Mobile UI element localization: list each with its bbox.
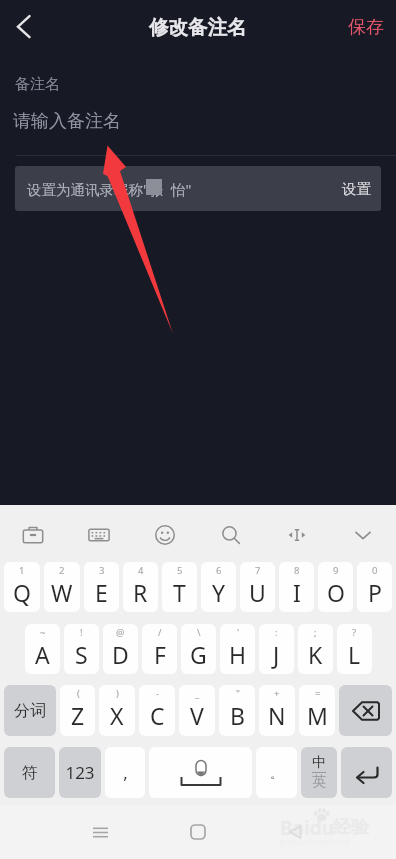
staticText: 7 (255, 564, 261, 577)
button[interactable]: ? (337, 624, 372, 674)
button[interactable]: 中 (301, 747, 337, 798)
button[interactable]: , (105, 747, 145, 798)
button[interactable]: 6 (201, 562, 236, 612)
button[interactable]: Move cursor (264, 513, 330, 557)
button[interactable]: 8 (279, 562, 314, 612)
button[interactable]: Hide keyboard (330, 513, 396, 557)
staticText: / (158, 626, 162, 639)
button[interactable]: = (299, 685, 335, 736)
staticText: _ (195, 687, 200, 700)
button[interactable]: Clipboard (0, 513, 66, 557)
button[interactable]: ~ (25, 624, 60, 674)
button[interactable]: Enter (341, 747, 392, 798)
button[interactable]: / (142, 624, 177, 674)
button[interactable]: _ (179, 685, 215, 736)
button[interactable]: Keyboard layout (66, 513, 132, 557)
button[interactable]: Search (198, 513, 264, 557)
staticText: 设置 (342, 180, 371, 198)
staticText: 0 (372, 564, 378, 577)
staticText: - (156, 687, 160, 700)
staticText: = (315, 687, 321, 700)
staticText: G (190, 639, 207, 670)
staticText: 中 (312, 754, 326, 772)
staticText: \ (197, 626, 201, 639)
staticText: A (35, 639, 50, 670)
button[interactable]: 9 (318, 562, 353, 612)
staticText: ~ (40, 626, 46, 639)
button[interactable]: 分词 (4, 685, 56, 736)
staticText: Q (13, 577, 31, 608)
staticText: 经验 (333, 816, 369, 839)
staticText: P (368, 577, 382, 608)
button[interactable]: : (259, 624, 294, 674)
button[interactable]: @ (103, 624, 138, 674)
button[interactable]: 2 (44, 562, 80, 612)
button[interactable]: 7 (240, 562, 275, 612)
button[interactable]: ' (220, 624, 255, 674)
staticText: ) (116, 687, 119, 700)
button[interactable]: ) (99, 685, 135, 736)
staticText: , (123, 761, 128, 784)
staticText: 1 (19, 564, 25, 577)
staticText: V (190, 700, 204, 731)
button[interactable]: + (259, 685, 295, 736)
button[interactable]: 4 (123, 562, 158, 612)
staticText: S (75, 639, 88, 670)
staticText: @ (116, 626, 125, 639)
staticText: 5 (177, 564, 183, 577)
button[interactable]: Recent apps (73, 805, 127, 859)
button[interactable]: \ (181, 624, 216, 674)
staticText: J (273, 639, 280, 670)
button[interactable]: Space (149, 747, 252, 798)
staticText: R (133, 577, 148, 608)
staticText: O (327, 577, 345, 608)
button[interactable]: 符 (4, 747, 55, 798)
button[interactable]: 设置为通讯录昵称"张 怡" (15, 166, 381, 211)
staticText: " (236, 687, 240, 700)
button[interactable]: 0 (357, 562, 392, 612)
staticText: K (308, 639, 323, 670)
staticText: ; (314, 626, 317, 639)
button[interactable]: - (139, 685, 175, 736)
staticText: Z (71, 700, 85, 731)
staticText: 123 (65, 761, 95, 784)
staticText: + (274, 687, 280, 700)
staticText: 6 (216, 564, 222, 577)
staticText: D (112, 639, 129, 670)
staticText: I (293, 577, 301, 608)
staticText: T (173, 577, 186, 608)
button[interactable]: 1 (4, 562, 40, 612)
staticText: ' (237, 626, 240, 639)
staticText: ! (80, 626, 83, 639)
button[interactable]: 5 (162, 562, 197, 612)
button[interactable]: ( (60, 685, 95, 736)
staticText: Baidu (280, 815, 335, 841)
button[interactable]: 3 (84, 562, 119, 612)
staticText: 请输入备注名 (13, 110, 121, 133)
staticText: 英 (312, 773, 326, 791)
staticText: E (95, 577, 108, 608)
staticText: : (275, 626, 278, 639)
staticText: 备注名 (15, 75, 60, 94)
staticText: 。 (270, 765, 283, 781)
button[interactable]: Backspace (339, 685, 392, 736)
button[interactable]: 保存 (336, 2, 396, 53)
button[interactable]: Back (0, 0, 48, 48)
staticText: U (249, 577, 266, 608)
button[interactable]: Home (171, 805, 225, 859)
staticText: M (307, 700, 328, 731)
staticText: 2 (59, 564, 65, 577)
button[interactable]: 。 (256, 747, 297, 798)
staticText: L (348, 639, 361, 670)
staticText: 3 (99, 564, 105, 577)
staticText: ? (352, 626, 357, 639)
button[interactable]: Emoji (132, 513, 198, 557)
staticText: 符 (22, 763, 38, 783)
staticText: 9 (333, 564, 339, 577)
button[interactable]: Back (269, 805, 323, 859)
button[interactable]: ! (64, 624, 99, 674)
button[interactable]: " (219, 685, 255, 736)
button[interactable]: ; (298, 624, 333, 674)
button[interactable]: 123 (59, 747, 101, 798)
